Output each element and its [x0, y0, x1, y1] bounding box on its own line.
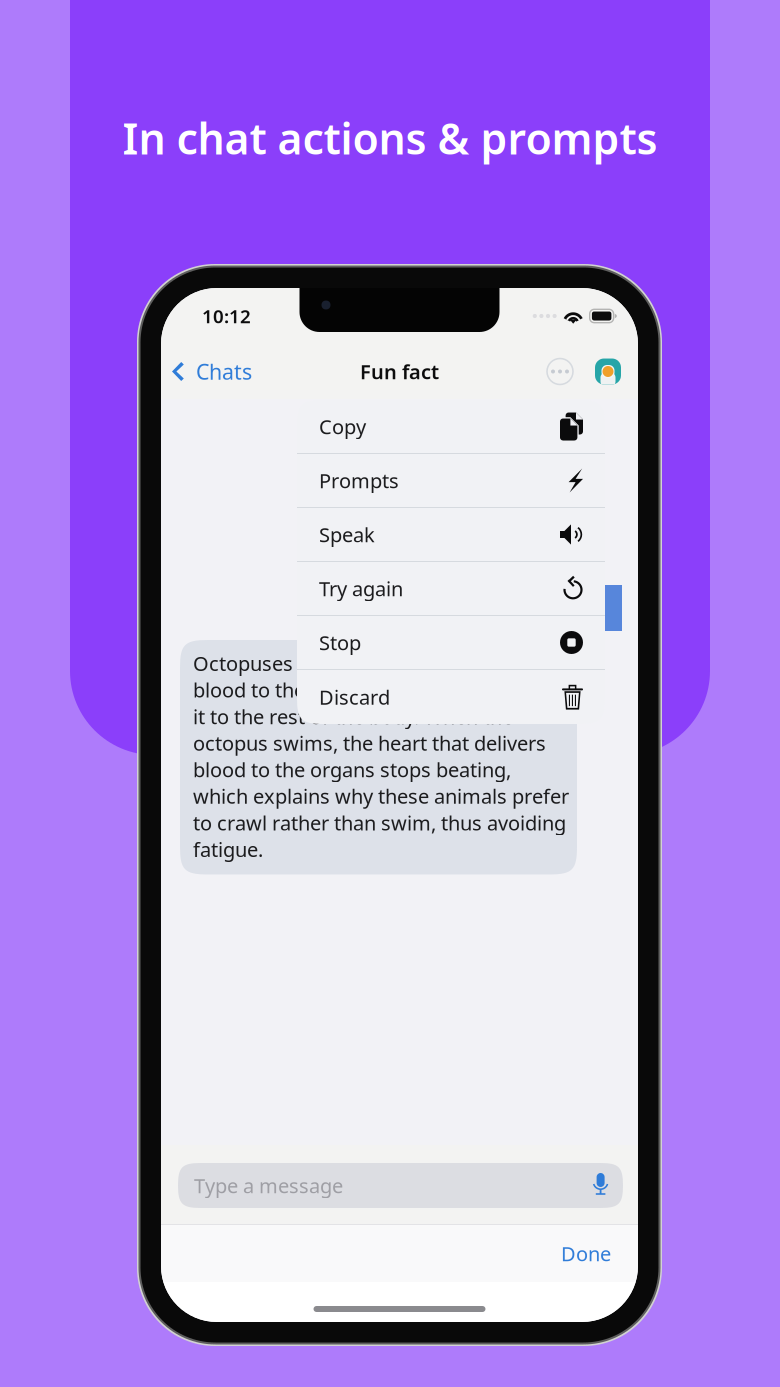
staticText: In chat actions & prompts [122, 110, 657, 166]
staticText: Speak [319, 521, 375, 548]
staticText: Fun fact [360, 358, 439, 385]
button[interactable]: Copy [297, 400, 605, 454]
staticText: Discard [319, 684, 390, 710]
button[interactable]: Done [534, 1224, 638, 1283]
button[interactable]: Prompts [297, 454, 605, 508]
button[interactable]: Stop [297, 616, 605, 670]
button[interactable]: Profile [573, 344, 621, 399]
staticText: to crawl rather than swim, thus avoiding [193, 809, 566, 836]
staticText: Type a message [194, 1172, 343, 1199]
staticText: which explains why these animals prefer [193, 783, 569, 809]
button[interactable]: Speak [297, 508, 605, 562]
staticText: Octopuses have three hearts. Two pump [193, 650, 569, 677]
staticText: Copy [319, 413, 366, 440]
staticText: it to the rest of the body. When the [193, 703, 513, 730]
staticText: Stop [319, 629, 361, 656]
staticText: blood to the gills, and the third pumps [193, 677, 546, 703]
button[interactable]: Chats [161, 344, 263, 399]
staticText: fatigue. [193, 836, 263, 862]
staticText: Done [561, 1240, 611, 1267]
staticText: blood to the organs stops beating, [193, 756, 511, 783]
button[interactable]: Dictate [591, 1173, 610, 1198]
staticText: octopus swims, the heart that delivers [193, 730, 546, 756]
button[interactable]: More options [547, 344, 573, 399]
staticText: Prompts [319, 467, 399, 494]
button[interactable]: Discard [297, 670, 605, 724]
staticText: Try again [319, 575, 403, 602]
button[interactable]: Try again [297, 562, 605, 616]
staticText: Chats [196, 357, 252, 386]
staticText: 10:12 [202, 304, 251, 328]
